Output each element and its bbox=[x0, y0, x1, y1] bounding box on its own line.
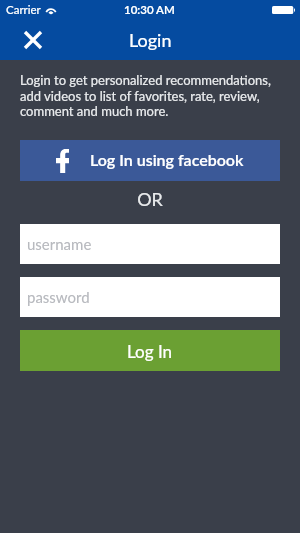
staticText: OR bbox=[0, 188, 300, 210]
button[interactable]: Log In using facebook bbox=[20, 140, 280, 181]
staticText: Login to get personalized recommendation… bbox=[20, 72, 271, 118]
staticText: Login bbox=[129, 29, 172, 51]
button[interactable]: password bbox=[20, 277, 280, 317]
staticText: Carrier bbox=[6, 3, 41, 17]
staticText: Log In using facebook bbox=[90, 150, 244, 169]
staticText: 10:30 AM bbox=[124, 3, 175, 17]
button[interactable]: Log In bbox=[20, 330, 280, 371]
button[interactable]: username bbox=[20, 224, 280, 264]
staticText: username bbox=[27, 235, 92, 253]
button[interactable]: Close bbox=[13, 20, 53, 60]
staticText: Log In bbox=[127, 341, 173, 361]
staticText: password bbox=[27, 288, 90, 306]
